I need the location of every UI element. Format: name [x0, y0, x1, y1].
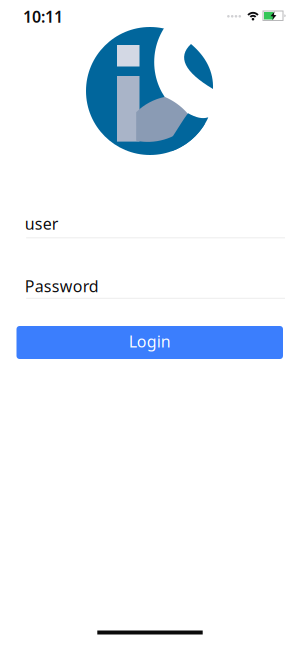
button[interactable]: Login [16, 326, 283, 359]
staticText: Password [25, 275, 99, 297]
staticText: user [25, 213, 59, 234]
button[interactable]: Password [25, 275, 284, 296]
staticText: 10:11 [23, 6, 63, 27]
staticText: Login [129, 331, 171, 352]
button[interactable]: user [25, 213, 284, 234]
